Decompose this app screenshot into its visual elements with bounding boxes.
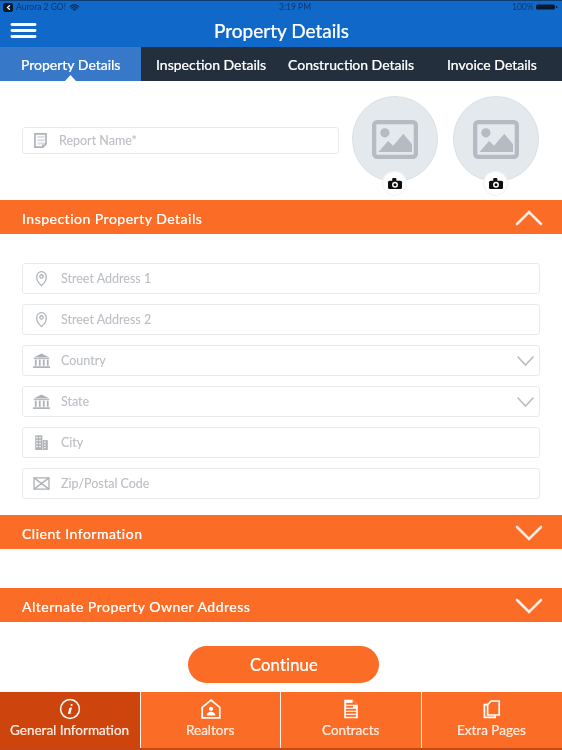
staticText: Client Information <box>22 525 143 542</box>
button[interactable]: Open navigation menu <box>8 15 38 45</box>
button[interactable]: Inspection Property Details <box>0 200 562 234</box>
button[interactable]: Report Name* <box>22 127 339 154</box>
button[interactable]: City <box>22 427 540 458</box>
staticText: General Information <box>10 722 130 738</box>
staticText: 100% <box>512 2 534 12</box>
button[interactable]: Add property photo <box>453 96 539 182</box>
button[interactable]: Country <box>22 345 540 376</box>
button[interactable]: Add property photo <box>352 96 438 182</box>
staticText: Construction Details <box>288 56 415 73</box>
staticText: Inspection Details <box>156 56 267 73</box>
staticText: Zip/Postal Code <box>61 476 150 491</box>
button[interactable]: Construction Details <box>281 47 422 81</box>
button[interactable]: General Information <box>0 692 140 750</box>
staticText: Alternate Property Owner Address <box>22 598 251 615</box>
button[interactable]: Alternate Property Owner Address <box>0 588 562 622</box>
staticText: City <box>61 435 84 450</box>
staticText: State <box>61 394 90 409</box>
staticText: Street Address 1 <box>61 271 152 286</box>
button[interactable]: Extra Pages <box>421 692 562 750</box>
staticText: Aurora 2 GO! <box>16 2 66 12</box>
button[interactable]: Inspection Details <box>141 47 281 81</box>
button[interactable]: Continue <box>188 646 379 683</box>
staticText: Invoice Details <box>447 56 537 73</box>
staticText: Extra Pages <box>457 722 526 738</box>
staticText: Street Address 2 <box>61 312 152 327</box>
button[interactable]: Street Address 2 <box>22 304 540 335</box>
staticText: Inspection Property Details <box>22 210 203 227</box>
staticText: Contracts <box>322 722 380 738</box>
button[interactable]: Take photo with camera <box>382 171 407 196</box>
button[interactable]: State <box>22 386 540 417</box>
button[interactable]: Property Details <box>0 47 141 81</box>
staticText: Country <box>61 353 106 368</box>
staticText: Report Name* <box>59 133 137 148</box>
button[interactable]: Contracts <box>280 692 421 750</box>
button[interactable]: Realtors <box>140 692 280 750</box>
button[interactable]: Invoice Details <box>422 47 562 81</box>
button[interactable]: Client Information <box>0 515 562 549</box>
button[interactable]: Take photo with camera <box>483 171 508 196</box>
staticText: Continue <box>250 655 318 675</box>
staticText: Property Details <box>21 56 121 73</box>
staticText: Realtors <box>186 722 235 738</box>
button[interactable]: Street Address 1 <box>22 263 540 294</box>
button[interactable]: Zip/Postal Code <box>22 468 540 499</box>
staticText: 3:19 PM <box>279 2 312 12</box>
staticText: Property Details <box>214 19 349 42</box>
